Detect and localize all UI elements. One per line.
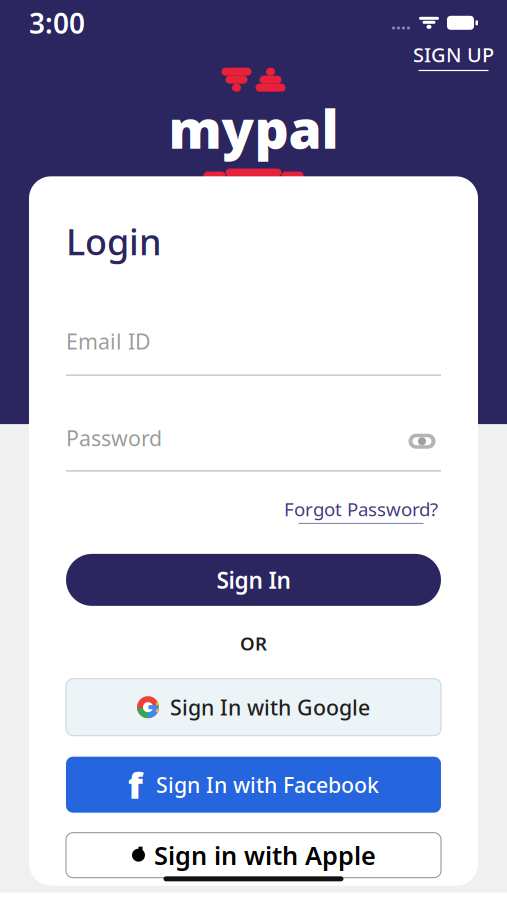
button[interactable]: Forgot Password? <box>281 494 441 527</box>
button[interactable]: Sign In with Google <box>66 679 441 736</box>
button[interactable]: f <box>66 757 441 813</box>
staticText: mypal <box>168 93 338 163</box>
staticText: Password <box>66 424 162 452</box>
staticText: Sign In with Facebook <box>156 770 379 799</box>
staticText: .... <box>391 11 411 34</box>
staticText: Forgot Password? <box>284 497 438 521</box>
staticText: Sign in with Apple <box>154 838 376 872</box>
staticText: Login <box>66 217 162 265</box>
staticText: OR <box>240 631 267 656</box>
staticText: 3:00 <box>29 4 85 41</box>
staticText: Email ID <box>66 327 151 355</box>
button[interactable]: SIGN UP <box>408 38 499 74</box>
button[interactable]: Show password <box>403 433 441 462</box>
staticText: Sign In with Google <box>170 693 370 721</box>
staticText: Sign In <box>216 565 290 595</box>
staticText: f <box>128 761 143 809</box>
staticText: SIGN UP <box>413 41 494 68</box>
button[interactable]: Sign in with Apple <box>66 833 441 878</box>
button[interactable]: Sign In <box>66 554 441 606</box>
